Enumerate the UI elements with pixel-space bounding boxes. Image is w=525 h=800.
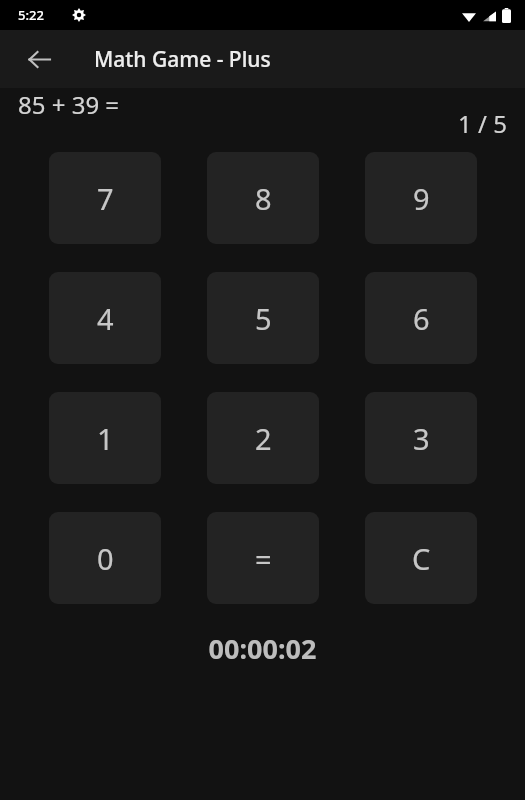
staticText: 6: [413, 299, 430, 338]
staticText: 0: [97, 539, 114, 578]
button[interactable]: 3: [365, 392, 477, 484]
staticText: 00:00:02: [0, 630, 525, 667]
staticText: 8: [255, 179, 272, 218]
button[interactable]: 9: [365, 152, 477, 244]
staticText: Math Game - Plus: [94, 45, 271, 74]
staticText: 1: [97, 419, 114, 458]
button[interactable]: 8: [207, 152, 319, 244]
staticText: 2: [255, 419, 272, 458]
staticText: 7: [97, 179, 114, 218]
button[interactable]: 4: [49, 272, 161, 364]
button[interactable]: C: [365, 512, 477, 604]
staticText: C: [412, 539, 431, 578]
staticText: =: [255, 539, 272, 578]
staticText: 5: [255, 299, 272, 338]
button[interactable]: Back: [16, 36, 62, 82]
staticText: 85 + 39 =: [18, 88, 120, 121]
staticText: 1 / 5: [458, 107, 507, 140]
button[interactable]: 2: [207, 392, 319, 484]
button[interactable]: 5: [207, 272, 319, 364]
staticText: 3: [413, 419, 430, 458]
staticText: 4: [97, 299, 114, 338]
button[interactable]: 6: [365, 272, 477, 364]
staticText: 5:22: [18, 6, 44, 24]
button[interactable]: =: [207, 512, 319, 604]
button[interactable]: 0: [49, 512, 161, 604]
staticText: 9: [413, 179, 430, 218]
button[interactable]: 1: [49, 392, 161, 484]
button[interactable]: 7: [49, 152, 161, 244]
